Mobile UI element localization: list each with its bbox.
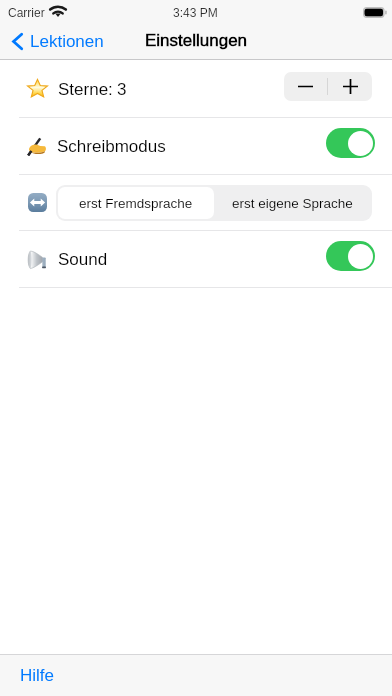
- staticText: erst eigene Sprache: [232, 196, 353, 211]
- staticText: Sound: [58, 250, 108, 269]
- staticText: Carrier: [8, 6, 45, 19]
- button[interactable]: erst Fremdsprache: [58, 187, 214, 219]
- button[interactable]: Weniger Sterne: [284, 72, 327, 101]
- staticText: 3:43 PM: [173, 6, 218, 19]
- staticText: Hilfe: [20, 666, 55, 685]
- staticText: Einstellungen: [145, 31, 248, 50]
- button[interactable]: Schreibmodus umschalten: [326, 128, 375, 158]
- staticText: erst Fremdsprache: [79, 196, 193, 211]
- button[interactable]: Mehr Sterne: [328, 72, 372, 101]
- staticText: Sterne:: [58, 80, 113, 99]
- button[interactable]: Hilfe: [0, 655, 55, 696]
- staticText: 3: [117, 80, 127, 99]
- staticText: Schreibmodus: [57, 137, 166, 156]
- staticText: Lektionen: [30, 32, 104, 51]
- button[interactable]: erst eigene Sprache: [214, 187, 370, 219]
- button[interactable]: Sound umschalten: [326, 241, 375, 271]
- button[interactable]: Lektionen: [0, 27, 114, 56]
